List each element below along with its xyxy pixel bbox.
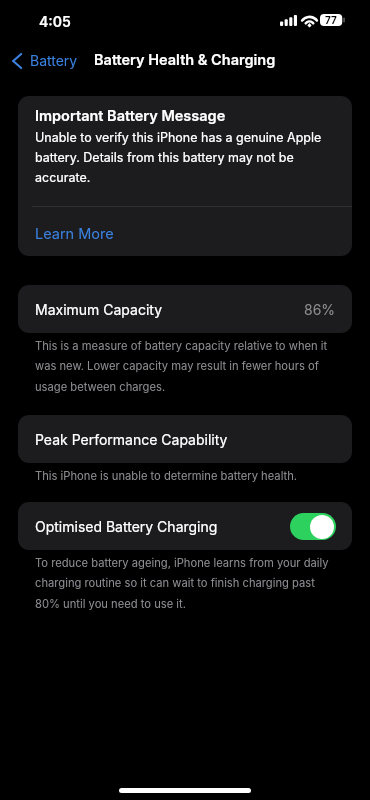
staticText: Battery Health & Charging [94,51,276,69]
staticText: 86% [304,301,336,318]
button[interactable]: Learn More [18,207,352,256]
button[interactable]: Maximum Capacity [18,285,352,333]
button[interactable]: Peak Performance Capability [18,415,352,463]
staticText: Optimised Battery Charging [35,518,218,535]
staticText: Unable to verify this iPhone has a genui… [35,130,336,185]
staticText: Learn More [35,225,114,243]
staticText: This iPhone is unable to determine batte… [35,469,297,483]
staticText: To reduce battery ageing, iPhone learns … [35,556,340,611]
staticText: Battery [30,52,78,69]
staticText: This is a measure of battery capacity re… [35,339,340,394]
staticText: Peak Performance Capability [35,431,228,448]
button[interactable]: Optimised Battery Charging [18,502,352,550]
staticText: 4:05 [39,13,71,30]
button[interactable]: Battery [0,48,86,73]
staticText: Important Battery Message [35,107,226,125]
button[interactable]: Optimised Battery Charging [290,513,336,540]
staticText: 77 [325,14,337,26]
staticText: Maximum Capacity [35,301,163,318]
